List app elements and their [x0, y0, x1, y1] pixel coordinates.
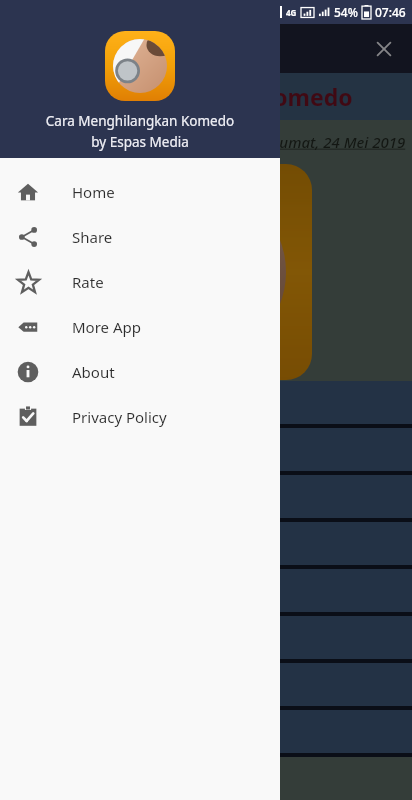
staticText: More App: [72, 317, 141, 337]
button[interactable]: [4, 428, 412, 471]
staticText: Share: [72, 227, 113, 247]
button[interactable]: Close: [364, 29, 404, 69]
button[interactable]: [4, 710, 412, 753]
staticText: Rate: [72, 272, 104, 292]
button[interactable]: [4, 663, 412, 706]
staticText: Jumat, 24 Mei 2019: [275, 132, 406, 152]
button[interactable]: More App: [0, 304, 280, 349]
staticText: 54%: [334, 4, 358, 20]
staticText: Cara Menghilangkan Komedo: [0, 112, 280, 130]
staticText: About: [72, 362, 115, 382]
button[interactable]: [4, 381, 412, 424]
button[interactable]: About: [0, 349, 280, 394]
staticText: by Espas Media: [0, 133, 280, 151]
button[interactable]: Privacy Policy: [0, 394, 280, 439]
button[interactable]: [4, 569, 412, 612]
button[interactable]: Share: [0, 214, 280, 259]
staticText: 07:46: [375, 4, 406, 20]
staticText: Cara Menghilangkan Komedo: [16, 37, 254, 60]
staticText: Home: [72, 182, 115, 202]
button[interactable]: Home: [0, 169, 280, 214]
button[interactable]: [4, 475, 412, 518]
staticText: Privacy Policy: [72, 407, 167, 427]
button[interactable]: [4, 522, 412, 565]
button[interactable]: Rate: [0, 259, 280, 304]
staticText: Cara Menghilangkan Komedo: [14, 81, 353, 112]
staticText: 4G: [286, 7, 297, 18]
button[interactable]: [4, 616, 412, 659]
